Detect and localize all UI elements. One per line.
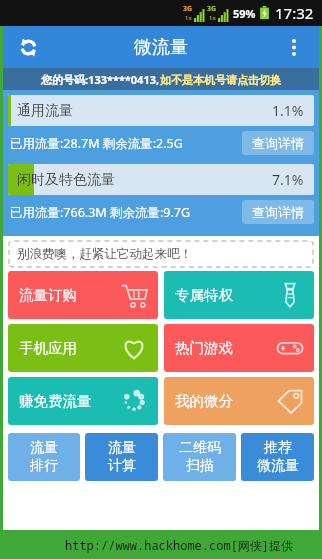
staticText: 59% [233,6,256,21]
button[interactable]: 二维码 [163,433,236,481]
staticText: 查询详情 [252,135,304,151]
button[interactable]: 推荐 [241,433,314,481]
staticText: 流量 [30,439,58,457]
staticText: 流量订购 [19,286,77,304]
staticText: 计算 [108,457,136,475]
staticText: 3G [183,4,193,14]
staticText: 流量 [108,439,136,457]
button[interactable]: Refresh [11,30,45,64]
button[interactable]: 手机应用 [8,324,158,372]
staticText: 专属特权 [175,286,233,304]
staticText: 别浪费噢，赶紧让它动起来吧！ [17,246,192,262]
staticText: 查询详情 [252,204,304,220]
staticText: 您的号码:133****0413, [41,72,160,87]
button[interactable]: 查询详情 [242,200,314,224]
staticText: 微流量 [257,457,299,475]
button[interactable]: 您的号码:133****0413, [3,68,319,90]
button[interactable]: 赚免费流量 [8,377,158,425]
button[interactable]: 查询详情 [242,131,314,155]
staticText: 3G [207,4,217,14]
button[interactable]: 流量订购 [8,271,158,319]
staticText: 已用流量:28.7M 剩余流量:2.5G [10,135,242,152]
button[interactable]: 流量 [85,433,158,481]
staticText: 1x [209,14,216,22]
button[interactable]: 通用流量 [8,95,314,126]
staticText: 如不是本机号请点击切换 [160,73,281,87]
staticText: 通用流量 [17,102,73,120]
button[interactable]: 我的微分 [164,377,314,425]
staticText: 赚免费流量 [19,392,92,410]
staticText: 排行 [30,457,58,475]
button[interactable]: 流量 [8,433,80,481]
staticText: 1x [185,14,192,22]
staticText: 已用流量:766.3M 剩余流量:9.7G [10,204,242,221]
button[interactable]: 闲时及特色流量 [8,164,314,195]
staticText: 微流量 [134,36,188,59]
staticText: 手机应用 [19,339,77,357]
staticText: 我的微分 [175,392,233,410]
staticText: 扫描 [186,457,214,475]
staticText: 二维码 [179,439,221,457]
button[interactable]: 专属特权 [164,271,314,319]
button[interactable]: More options [277,30,311,64]
staticText: http://www.hackhome.com[网侠]提供 [65,537,294,553]
staticText: 17:32 [275,3,314,23]
button[interactable]: 热门游戏 [164,324,314,372]
staticText: 热门游戏 [175,339,233,357]
staticText: 7.1% [272,170,304,189]
staticText: 推荐 [264,439,292,457]
staticText: 闲时及特色流量 [17,171,115,189]
staticText: 1.1% [272,101,304,120]
